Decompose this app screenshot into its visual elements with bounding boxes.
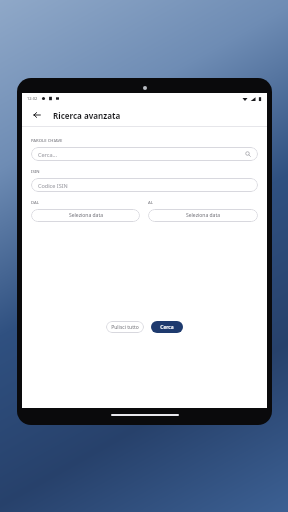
staticText: AL bbox=[148, 200, 153, 206]
button[interactable]: Indietro bbox=[29, 107, 45, 123]
staticText: ISIN bbox=[31, 169, 40, 175]
button[interactable]: Cerca bbox=[151, 321, 183, 333]
staticText: 12:02 bbox=[27, 96, 38, 101]
staticText: Cerca bbox=[160, 324, 174, 331]
staticText: PAROLE CHIAVE bbox=[31, 138, 63, 144]
staticText: Cerca... bbox=[38, 151, 57, 158]
staticText: Seleziona data bbox=[186, 212, 220, 219]
button[interactable]: Pulisci tutto bbox=[106, 321, 144, 333]
staticText: Codice ISIN bbox=[38, 182, 68, 189]
button[interactable]: Seleziona data bbox=[31, 209, 140, 222]
staticText: Seleziona data bbox=[69, 212, 103, 219]
staticText: Ricerca avanzata bbox=[53, 110, 121, 121]
staticText: Pulisci tutto bbox=[111, 324, 139, 331]
button[interactable]: Seleziona data bbox=[148, 209, 258, 222]
staticText: DAL bbox=[31, 200, 39, 206]
button[interactable]: Codice ISIN bbox=[31, 178, 258, 192]
button[interactable]: Cerca... bbox=[31, 147, 258, 161]
